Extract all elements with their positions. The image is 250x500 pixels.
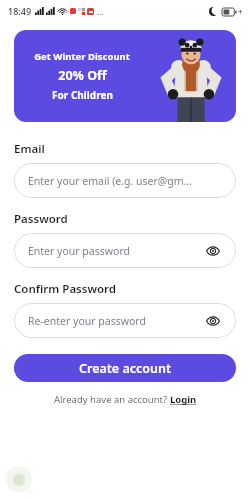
staticText: … <box>97 6 104 17</box>
button[interactable]: Enter your email (e.g. user@gm… <box>14 163 236 198</box>
button[interactable]: Show password <box>204 242 222 260</box>
staticText: + <box>238 6 243 17</box>
staticText: Get Winter Discount <box>34 50 130 63</box>
button[interactable]: Get Winter Discount <box>14 30 236 122</box>
staticText: Already have an account? <box>54 393 170 406</box>
staticText: Enter your password <box>28 244 204 258</box>
staticText: Login <box>170 393 197 406</box>
button[interactable]: Show password <box>204 312 222 330</box>
staticText: 18:49 <box>8 5 32 17</box>
staticText: Re-enter your password <box>28 314 204 328</box>
button[interactable]: Login <box>170 393 197 406</box>
button[interactable]: Create account <box>14 354 236 382</box>
button[interactable]: Re-enter your password <box>14 303 236 338</box>
staticText: Email <box>14 141 45 157</box>
staticText: Password <box>14 211 68 227</box>
staticText: 20% Off <box>58 67 107 84</box>
staticText: Create account <box>79 360 172 377</box>
staticText: Enter your email (e.g. user@gm… <box>28 174 222 188</box>
staticText: Confirm Password <box>14 281 117 297</box>
button[interactable]: Enter your password <box>14 233 236 268</box>
staticText: For Children <box>52 88 113 102</box>
